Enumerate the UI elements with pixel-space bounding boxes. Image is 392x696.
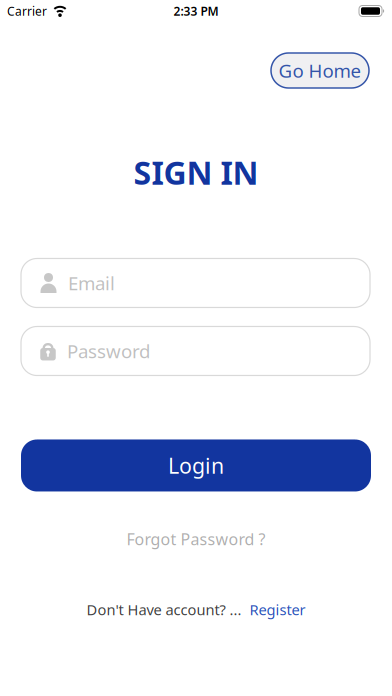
button[interactable]: Go Home <box>271 53 369 88</box>
staticText: Login <box>168 451 224 480</box>
staticText: 2:33 PM <box>173 3 218 19</box>
button[interactable]: Password <box>21 326 370 375</box>
staticText: SIGN IN <box>133 151 258 193</box>
button[interactable]: Register <box>249 600 305 619</box>
button[interactable]: Email <box>21 258 370 307</box>
staticText: Go Home <box>278 58 361 83</box>
button[interactable]: Login <box>21 439 371 491</box>
staticText: Forgot Password ? <box>126 528 265 550</box>
staticText: Register <box>249 600 305 619</box>
staticText: Email <box>68 271 115 295</box>
staticText: Don't Have account? ... <box>86 600 241 619</box>
staticText: Carrier <box>7 3 47 19</box>
button[interactable]: Forgot Password ? <box>126 528 265 550</box>
staticText: Password <box>67 339 150 363</box>
